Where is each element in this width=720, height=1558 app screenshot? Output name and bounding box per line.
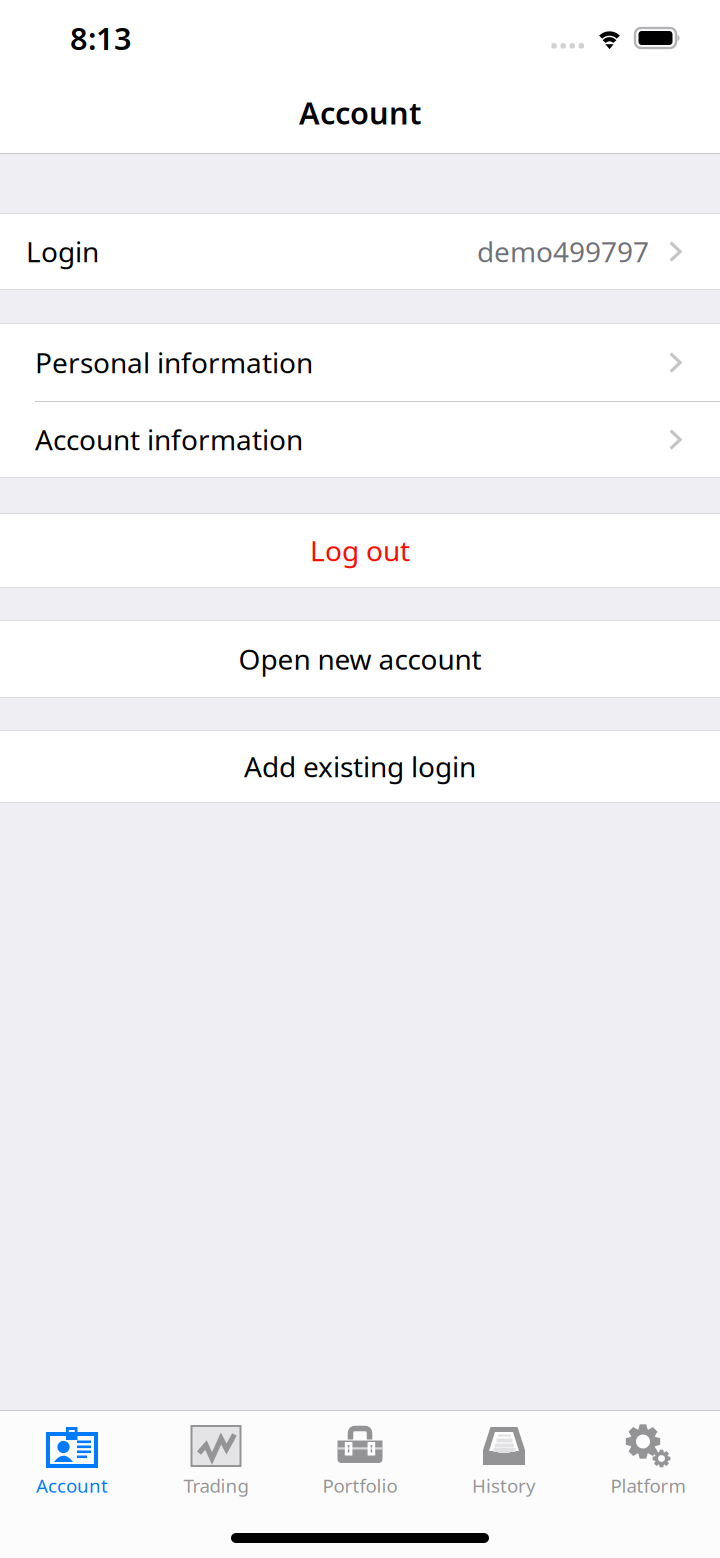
staticText: Account [299, 92, 421, 133]
button[interactable]: Personal information [0, 324, 720, 401]
staticText: Add existing login [244, 748, 476, 785]
staticText: Trading [183, 1473, 248, 1498]
button[interactable]: Account information [0, 402, 720, 477]
staticText: Account information [35, 421, 303, 458]
button[interactable]: Account [0, 1411, 144, 1504]
button[interactable]: Trading [144, 1411, 288, 1504]
staticText: Open new account [238, 640, 481, 678]
button[interactable]: History [432, 1411, 576, 1504]
staticText: History [472, 1473, 536, 1498]
staticText: Account [36, 1473, 108, 1498]
staticText: Log out [310, 532, 410, 569]
button[interactable]: Platform [576, 1411, 720, 1504]
staticText: demo499797 [477, 233, 649, 270]
staticText: Platform [610, 1473, 685, 1498]
button[interactable]: Portfolio [288, 1411, 432, 1504]
staticText: 8:13 [70, 18, 132, 58]
staticText: Login [26, 233, 99, 270]
button[interactable]: Login [0, 214, 720, 289]
staticText: Personal information [35, 344, 313, 381]
staticText: Portfolio [322, 1473, 397, 1498]
button[interactable]: Log out [0, 514, 720, 587]
button[interactable]: Open new account [0, 621, 720, 697]
button[interactable]: Add existing login [0, 731, 720, 802]
